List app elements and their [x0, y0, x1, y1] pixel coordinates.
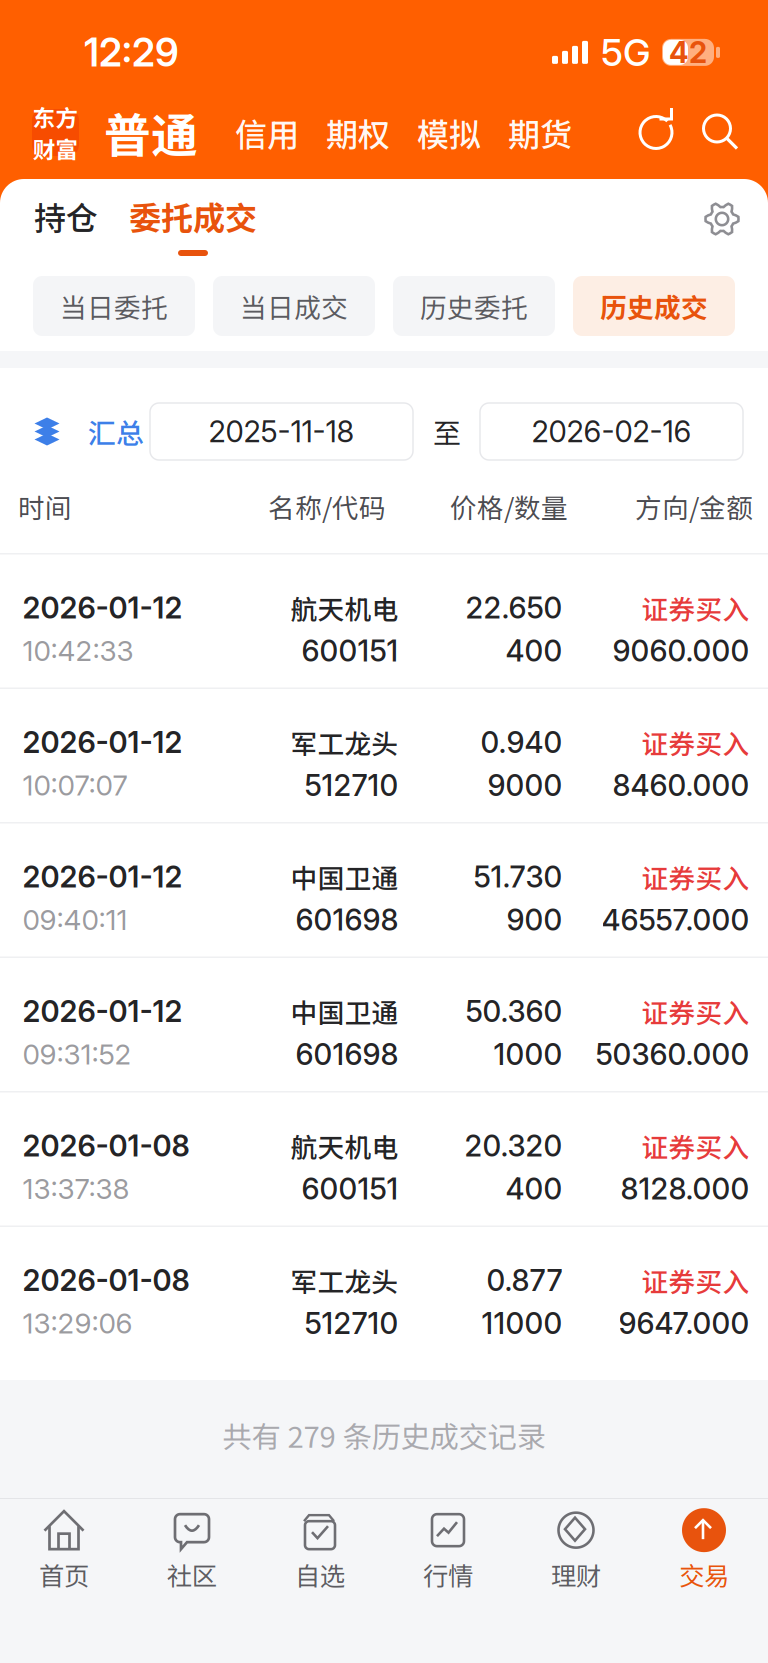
staticText: 证券买入: [641, 588, 749, 627]
button[interactable]: 2025-11-18: [150, 403, 413, 460]
staticText: 当日成交: [240, 287, 348, 325]
staticText: 22.650: [465, 590, 562, 626]
staticText: 12:29: [84, 29, 179, 76]
staticText: 0.940: [480, 725, 562, 760]
staticText: 航天机电: [290, 588, 398, 627]
staticText: 2026-01-08: [22, 1128, 189, 1164]
staticText: 持仓: [34, 193, 98, 239]
staticText: 9647.000: [618, 1306, 749, 1341]
staticText: 期权: [326, 109, 390, 156]
staticText: 至: [433, 411, 461, 452]
button[interactable]: 汇总: [33, 411, 144, 452]
button[interactable]: Search: [678, 111, 742, 153]
button[interactable]: 理财: [512, 1503, 640, 1599]
button[interactable]: 2026-01-12: [18, 554, 749, 687]
staticText: 期货: [508, 109, 572, 156]
staticText: 模拟: [417, 109, 481, 156]
staticText: 航天机电: [290, 1126, 398, 1165]
staticText: 证券买入: [641, 723, 749, 762]
button[interactable]: 模拟: [390, 109, 481, 156]
button[interactable]: 交易: [640, 1503, 768, 1599]
button[interactable]: 持仓: [30, 187, 102, 245]
button[interactable]: 自选: [256, 1503, 384, 1599]
staticText: 东方: [32, 100, 78, 133]
staticText: 400: [505, 1171, 562, 1207]
staticText: 方向/金额: [635, 487, 753, 526]
staticText: 13:29:06: [22, 1306, 132, 1340]
button[interactable]: Settings: [704, 187, 740, 237]
button[interactable]: 首页: [0, 1503, 128, 1599]
staticText: 证券买入: [641, 992, 749, 1031]
staticText: 首页: [39, 1556, 89, 1593]
staticText: 2026-02-16: [531, 414, 691, 449]
button[interactable]: 期货: [481, 109, 572, 156]
staticText: 13:37:38: [22, 1172, 129, 1206]
staticText: 512710: [304, 1306, 398, 1341]
staticText: 400: [505, 633, 562, 669]
button[interactable]: 2026-01-12: [18, 823, 749, 956]
button[interactable]: 普通: [79, 99, 198, 166]
button[interactable]: 2026-01-08: [18, 1092, 749, 1225]
button[interactable]: 历史委托: [393, 276, 555, 336]
button[interactable]: East Money: [32, 109, 79, 156]
staticText: 0.877: [486, 1263, 562, 1298]
button[interactable]: 信用: [198, 109, 299, 156]
button[interactable]: 当日成交: [213, 276, 375, 336]
button[interactable]: 2026-01-08: [18, 1227, 749, 1360]
staticText: 普通: [104, 99, 198, 166]
staticText: 2026-01-08: [22, 1263, 189, 1298]
staticText: 09:31:52: [22, 1037, 131, 1071]
staticText: 当日委托: [60, 287, 168, 325]
staticText: 09:40:11: [22, 903, 127, 937]
staticText: 11000: [481, 1306, 562, 1341]
staticText: 证券买入: [641, 857, 749, 896]
staticText: 财富: [32, 132, 78, 165]
staticText: 9060.000: [612, 633, 749, 669]
staticText: 军工龙头: [290, 723, 398, 762]
staticText: 10:07:07: [22, 768, 127, 802]
button[interactable]: 委托成交: [127, 187, 259, 256]
staticText: 历史成交: [600, 287, 708, 325]
staticText: 历史委托: [420, 287, 528, 325]
staticText: 交易: [679, 1556, 729, 1593]
button[interactable]: 2026-01-12: [18, 958, 749, 1091]
staticText: 8128.000: [620, 1171, 749, 1207]
button[interactable]: 社区: [128, 1503, 256, 1599]
staticText: 9000: [487, 768, 562, 803]
staticText: 理财: [551, 1556, 601, 1593]
staticText: 中国卫通: [290, 857, 398, 896]
staticText: 46557.000: [601, 902, 749, 938]
staticText: 2025-11-18: [208, 414, 354, 449]
staticText: 2026-01-12: [22, 725, 182, 760]
staticText: 信用: [235, 109, 299, 156]
staticText: 名称/代码: [268, 487, 386, 526]
staticText: 汇总: [88, 411, 144, 452]
staticText: 601698: [295, 902, 398, 938]
staticText: 1000: [493, 1037, 562, 1072]
staticText: 共有 279 条历史成交记录: [222, 1414, 545, 1456]
staticText: 中国卫通: [290, 992, 398, 1031]
staticText: 50360.000: [595, 1037, 749, 1072]
staticText: 50.360: [465, 994, 562, 1029]
staticText: 证券买入: [641, 1261, 749, 1300]
staticText: 2026-01-12: [22, 994, 182, 1029]
button[interactable]: 行情: [384, 1503, 512, 1599]
staticText: 委托成交: [129, 193, 257, 239]
staticText: 行情: [423, 1556, 473, 1593]
staticText: 512710: [304, 768, 398, 803]
staticText: 20.320: [464, 1128, 562, 1164]
staticText: 600151: [301, 633, 398, 669]
staticText: 601698: [295, 1037, 398, 1072]
staticText: 2026-01-12: [22, 590, 182, 626]
staticText: 600151: [301, 1171, 398, 1207]
staticText: 2026-01-12: [22, 859, 182, 895]
staticText: 42: [669, 35, 707, 70]
button[interactable]: 2026-02-16: [480, 403, 743, 460]
button[interactable]: 历史成交: [573, 276, 735, 336]
button[interactable]: Refresh: [636, 111, 678, 153]
button[interactable]: 2026-01-12: [18, 689, 749, 822]
staticText: 价格/数量: [450, 487, 568, 526]
button[interactable]: 期权: [299, 109, 390, 156]
staticText: 自选: [295, 1556, 345, 1593]
button[interactable]: 当日委托: [33, 276, 195, 336]
